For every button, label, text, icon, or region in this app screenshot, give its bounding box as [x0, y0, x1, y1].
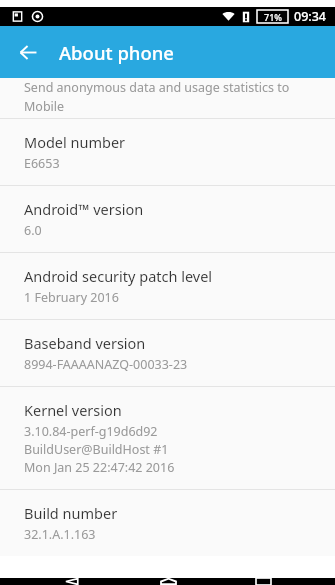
button[interactable]: Baseband version	[0, 320, 335, 386]
staticText: Android™ version	[24, 199, 144, 219]
staticText: 09:34	[294, 8, 327, 25]
button[interactable]: Back	[10, 34, 46, 70]
staticText: 3.10.84-perf-g19d6d92	[24, 423, 158, 440]
staticText: BuildUser@BuildHost #1	[24, 441, 169, 458]
staticText: Build number	[24, 503, 118, 523]
staticText: Mon Jan 25 22:47:42 2016	[24, 459, 175, 476]
button[interactable]: Kernel version	[0, 387, 335, 489]
staticText: 71%	[264, 11, 282, 23]
button[interactable]: Back	[49, 578, 95, 585]
staticText: 32.1.A.1.163	[24, 526, 96, 543]
staticText: 8994-FAAAANAZQ-00033-23	[24, 356, 188, 373]
button[interactable]: Android security patch level	[0, 253, 335, 319]
staticText: 1 February 2016	[24, 289, 119, 306]
staticText: Model number	[24, 132, 126, 152]
staticText: About phone	[59, 40, 174, 65]
button[interactable]: Recent apps	[240, 578, 286, 585]
staticText: Android security patch level	[24, 266, 213, 286]
staticText: Kernel version	[24, 400, 122, 420]
button[interactable]: Model number	[0, 119, 335, 185]
staticText: 6.0	[24, 222, 42, 239]
staticText: Mobile	[24, 98, 65, 115]
button[interactable]: Android™ version	[0, 186, 335, 252]
staticText: Send anonymous data and usage statistics…	[24, 79, 319, 96]
staticText: Baseband version	[24, 333, 146, 353]
staticText: E6653	[24, 155, 60, 172]
button[interactable]: Build number	[0, 490, 335, 556]
button[interactable]: Home	[145, 578, 191, 585]
button[interactable]: Send anonymous data and usage statistics…	[0, 78, 335, 118]
